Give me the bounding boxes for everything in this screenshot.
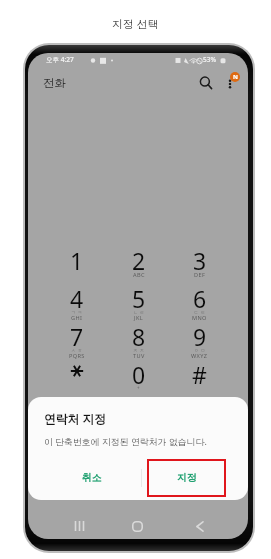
button[interactable]: 8 [108,322,169,360]
staticText: TUV [133,352,145,360]
staticText: WXYZ [191,352,208,360]
button[interactable]: 2 [108,246,169,284]
button[interactable]: 5 [108,284,169,322]
staticText: PQRS [69,352,85,360]
staticText: 8 [132,321,146,352]
staticText: 53% [203,55,216,64]
staticText: 1 [70,245,84,276]
staticText: 오후 4:27 [46,55,74,64]
staticText: ㅈ ㅊ [133,347,145,353]
staticText: 6 [193,283,207,314]
staticText: 5 [132,283,146,314]
staticText: JKL [134,314,143,322]
staticText: ㅅ ㅎ [71,347,83,353]
staticText: 0 [132,359,146,390]
staticText: 9 [193,321,207,352]
staticText: 2 [132,245,146,276]
staticText: 7 [70,321,84,352]
staticText: ㄴ ㄹ [133,309,145,315]
staticText: # [192,359,207,390]
staticText: DEF [194,271,206,279]
staticText: 연락처 지정 [44,410,107,426]
button[interactable]: 지정 [147,459,226,497]
button[interactable]: # [169,360,230,398]
button[interactable]: Recents [64,511,94,539]
button[interactable]: More options [218,72,242,96]
staticText: MNO [192,314,207,322]
staticText: 이 단축번호에 지정된 연락처가 없습니다. [44,435,207,447]
staticText: 지정 [177,472,197,484]
staticText: 4 [70,283,84,314]
button[interactable]: 4 [46,284,108,322]
staticText: 지정 선택 [112,16,159,31]
button[interactable]: 1 [46,246,108,284]
staticText: ㄷ ㅌ [194,309,206,315]
staticText: 전화 [43,76,66,90]
button[interactable]: 6 [169,284,230,322]
staticText: GHI [71,314,83,322]
button[interactable]: Back [185,511,215,539]
button[interactable]: 7 [46,322,108,360]
button[interactable]: Search [194,71,218,95]
button[interactable]: 9 [169,322,230,360]
button[interactable]: 0 [108,360,169,398]
staticText: ABC [133,271,145,279]
button[interactable]: Home [122,511,152,539]
staticText: 취소 [82,472,102,484]
button[interactable]: 취소 [40,459,144,497]
staticText: N [233,73,238,81]
staticText: ㄱ ㅋ [71,309,83,315]
button[interactable]: 3 [169,246,230,284]
staticText: + [137,385,140,391]
staticText: 3 [193,245,207,276]
staticText: ㅇ ㅁ [194,347,206,353]
button[interactable] [46,360,108,398]
